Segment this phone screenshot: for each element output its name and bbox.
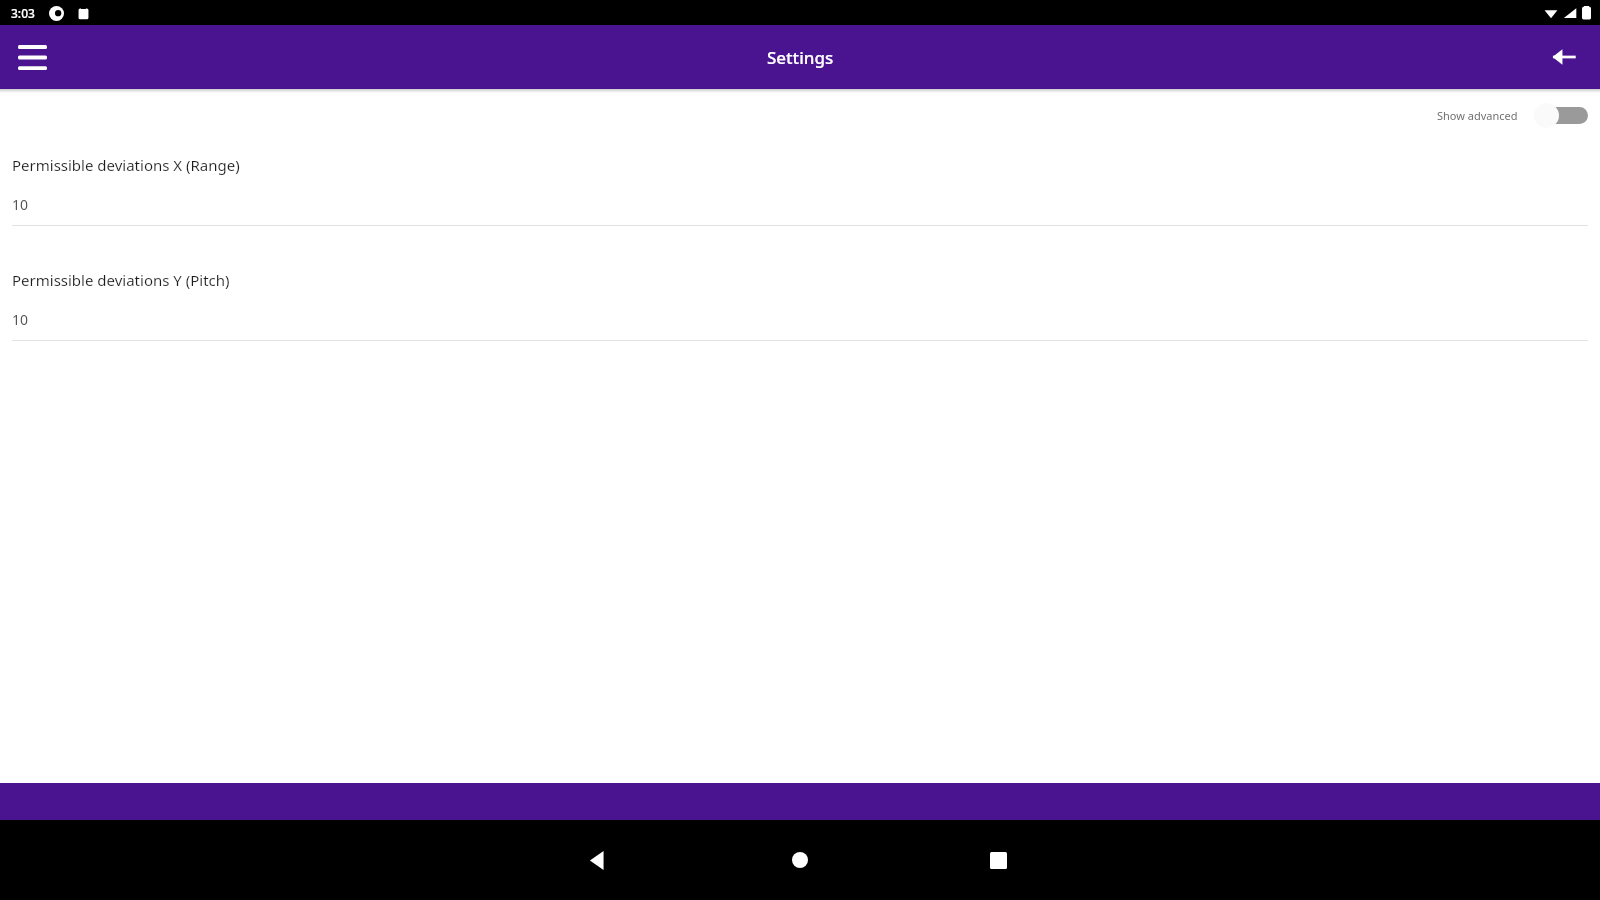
button[interactable]: Home [770, 830, 830, 890]
staticText: Show advanced [1437, 108, 1518, 123]
button[interactable]: Permissible deviations X (Range) [0, 155, 1600, 226]
staticText: Settings [767, 46, 834, 69]
button[interactable]: Show advanced [1433, 98, 1592, 132]
staticText: Permissible deviations Y (Pitch) [12, 270, 230, 290]
staticText: 10 [12, 310, 29, 329]
staticText: 3:03 [11, 5, 35, 21]
button[interactable]: Permissible deviations Y (Pitch) [0, 270, 1600, 341]
staticText: Permissible deviations X (Range) [12, 155, 240, 175]
staticText: 10 [12, 195, 29, 214]
button[interactable]: Back [1538, 31, 1590, 83]
button[interactable]: Recent apps [968, 830, 1028, 890]
button[interactable]: Back [567, 830, 627, 890]
button[interactable]: Open navigation menu [6, 31, 58, 83]
